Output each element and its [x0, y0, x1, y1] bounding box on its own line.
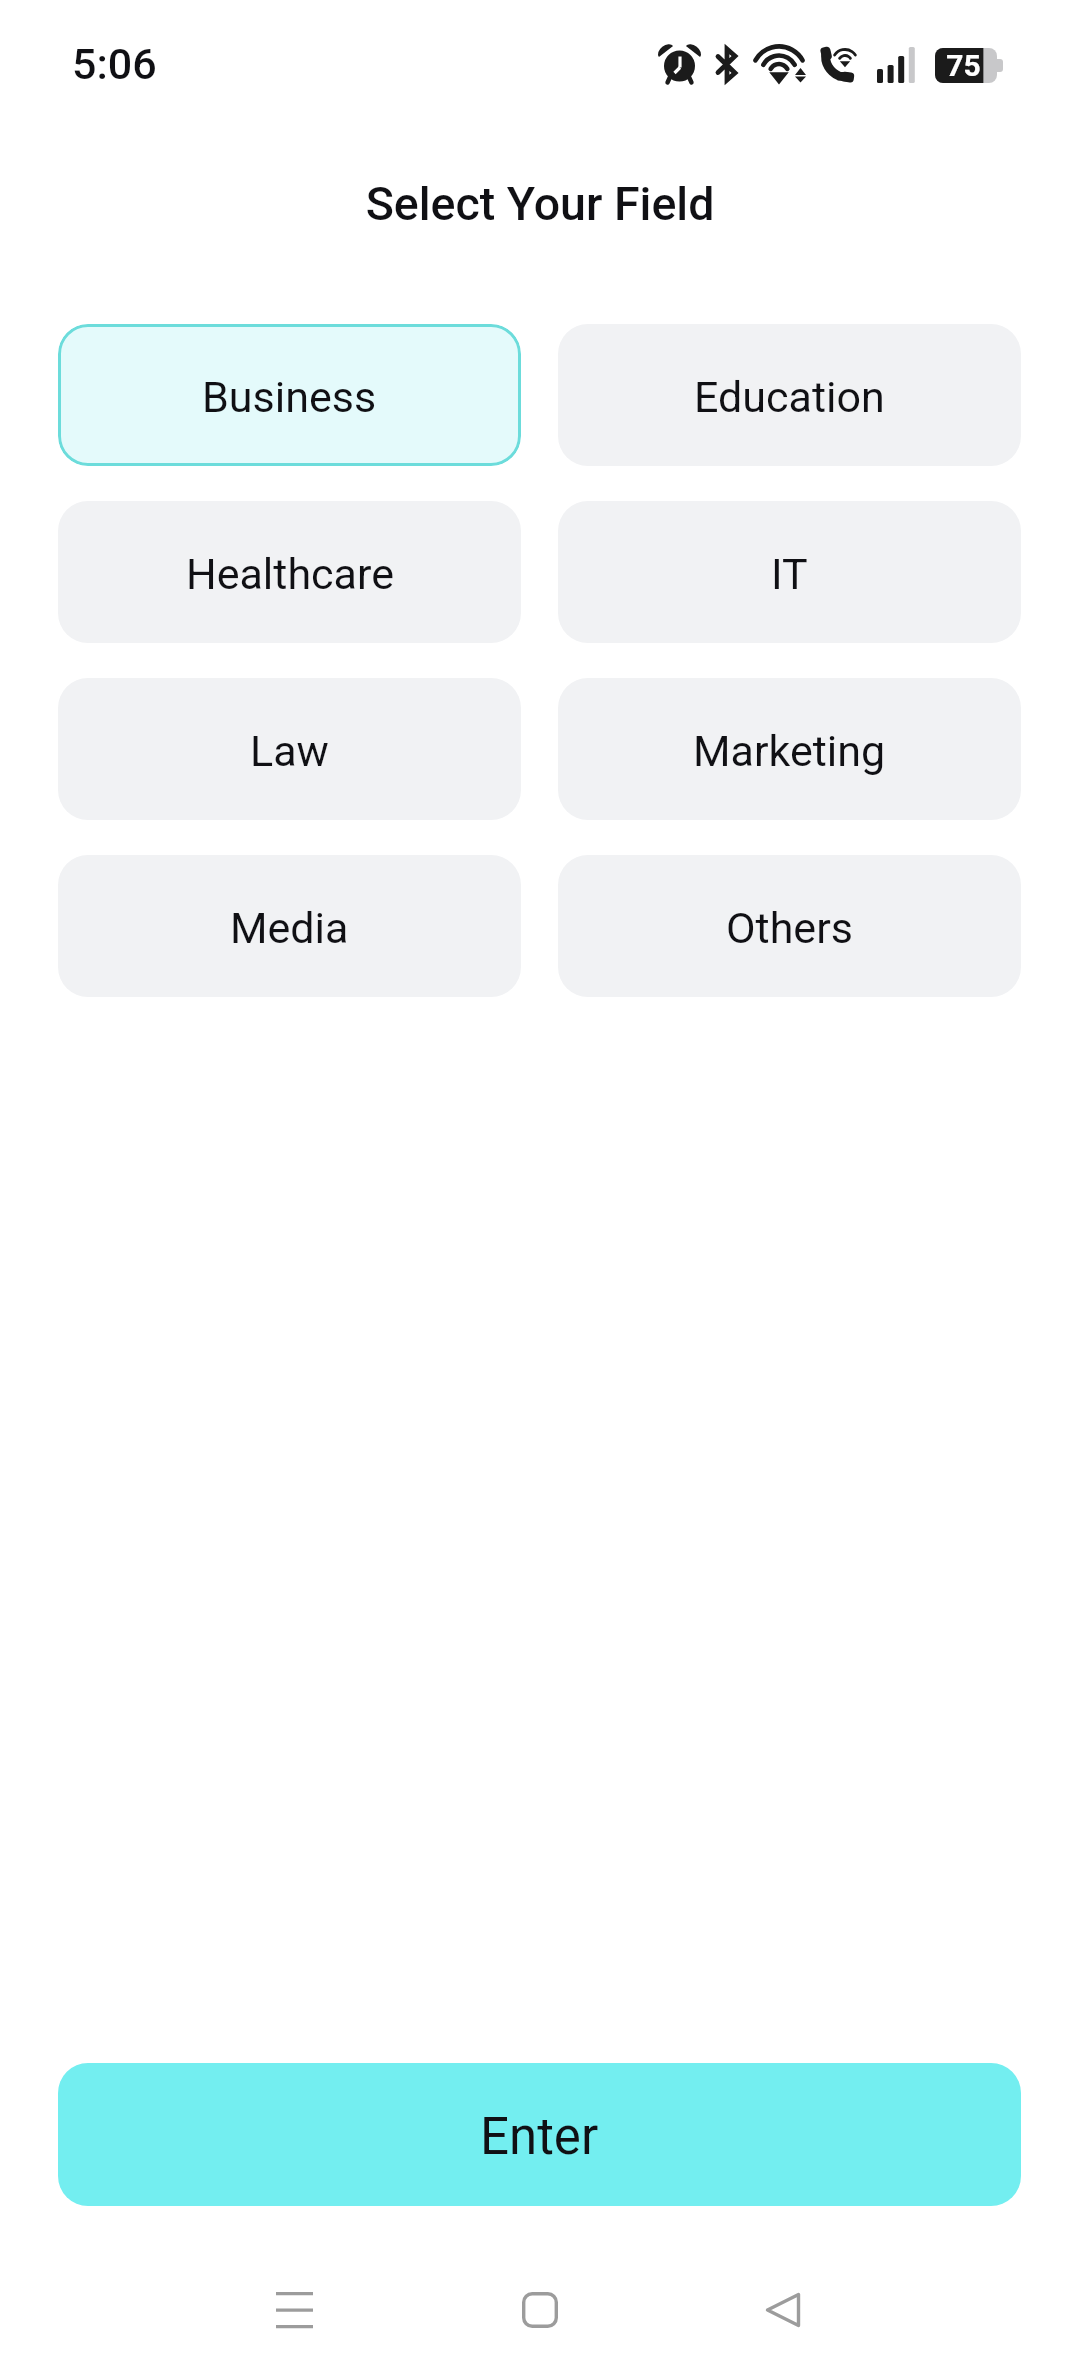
staticText: Education	[694, 372, 885, 422]
button[interactable]: Business	[58, 324, 521, 466]
button[interactable]: Back	[723, 2250, 843, 2370]
button[interactable]: Education	[558, 324, 1021, 466]
staticText: Select Your Field	[0, 177, 1080, 231]
staticText: 75	[940, 48, 987, 83]
staticText: Media	[230, 903, 349, 953]
button[interactable]: Enter	[58, 2063, 1021, 2206]
staticText: 5:06	[72, 39, 157, 89]
staticText: Law	[250, 726, 329, 776]
button[interactable]: Home	[480, 2250, 600, 2370]
button[interactable]: IT	[558, 501, 1021, 643]
button[interactable]: Healthcare	[58, 501, 521, 643]
button[interactable]: Others	[558, 855, 1021, 997]
staticText: Healthcare	[186, 549, 394, 599]
button[interactable]: Media	[58, 855, 521, 997]
button[interactable]: Marketing	[558, 678, 1021, 820]
button[interactable]: Law	[58, 678, 521, 820]
staticText: Others	[726, 903, 853, 953]
staticText: Business	[202, 372, 377, 422]
staticText: Enter	[480, 2107, 599, 2167]
staticText: IT	[771, 549, 808, 599]
button[interactable]: Recents	[234, 2250, 354, 2370]
staticText: Marketing	[693, 726, 886, 776]
